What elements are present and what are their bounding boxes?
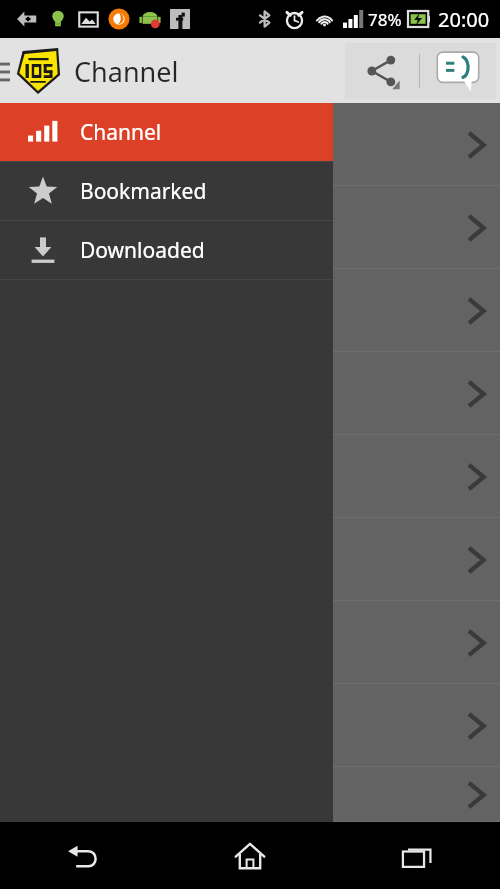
- staticText: Downloaded: [80, 236, 205, 265]
- staticText: 78%: [368, 8, 402, 31]
- button[interactable]: [0, 767, 500, 822]
- staticText: Channel: [74, 53, 179, 90]
- button[interactable]: Chat: [420, 43, 496, 99]
- button[interactable]: [0, 186, 500, 269]
- button[interactable]: [0, 269, 500, 352]
- button[interactable]: [0, 103, 500, 186]
- staticText: 20:00: [438, 6, 490, 33]
- button[interactable]: Share: [345, 43, 419, 99]
- button[interactable]: [0, 601, 500, 684]
- button[interactable]: [0, 435, 500, 518]
- staticText: Channel: [80, 118, 162, 147]
- button[interactable]: Channel: [0, 103, 333, 161]
- button[interactable]: [0, 684, 500, 767]
- button[interactable]: Bookmarked: [0, 162, 333, 220]
- button[interactable]: Downloaded: [0, 221, 333, 279]
- button[interactable]: Open navigation drawer: [0, 60, 10, 82]
- button[interactable]: Recent apps: [333, 822, 500, 889]
- button[interactable]: Back: [0, 822, 166, 889]
- button[interactable]: [0, 352, 500, 435]
- button[interactable]: Home: [166, 822, 333, 889]
- button[interactable]: [0, 518, 500, 601]
- staticText: Bookmarked: [80, 177, 207, 206]
